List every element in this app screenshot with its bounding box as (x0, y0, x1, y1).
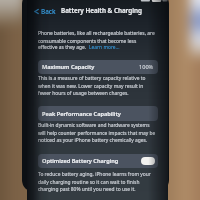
staticText: Optimized Battery Charging (42, 157, 119, 165)
staticText: Peak Performance Capability (42, 110, 121, 118)
other: Optimized Battery Charging (141, 157, 155, 165)
staticText: This is a measure of battery capacity re… (38, 75, 146, 96)
staticText: Maximum Capacity (42, 63, 95, 71)
button[interactable]: Back (32, 5, 57, 17)
staticText: Back (41, 7, 56, 16)
button[interactable]: Peak Performance Capability (38, 106, 158, 121)
staticText: 100% (139, 63, 154, 71)
staticText: Built-in dynamic software and hardware s… (38, 122, 156, 143)
button[interactable]: Optimized Battery Charging (38, 154, 158, 168)
staticText: Learn more... (89, 44, 120, 51)
button[interactable]: Learn more... (89, 44, 120, 51)
staticText: effective as they age. (38, 44, 87, 51)
staticText: Battery Health & Charging (61, 6, 142, 15)
staticText: Phone batteries, like all rechargeable b… (38, 30, 155, 44)
staticText: To reduce battery aging, iPhone learns f… (38, 171, 151, 192)
button[interactable]: Maximum Capacity (38, 60, 158, 74)
